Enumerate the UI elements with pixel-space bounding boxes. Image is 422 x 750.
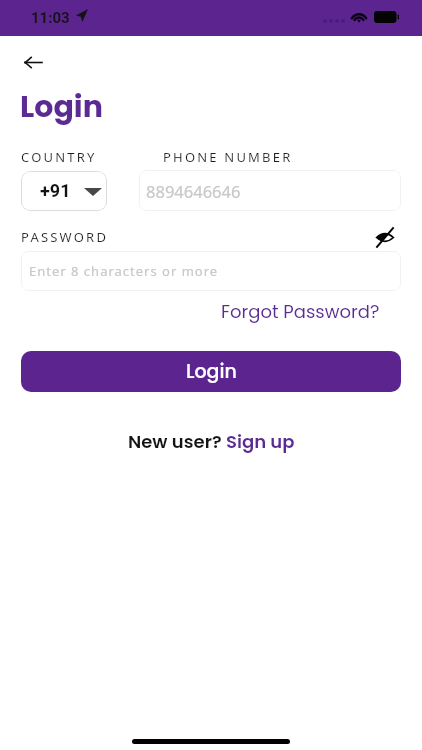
- button[interactable]: New user?: [128, 429, 295, 454]
- staticText: New user?: [128, 429, 226, 454]
- staticText: PASSWORD: [21, 228, 109, 246]
- staticText: Login: [186, 358, 237, 385]
- staticText: PHONE NUMBER: [163, 148, 293, 166]
- button[interactable]: Enter 8 characters or more: [21, 251, 401, 291]
- staticText: 8894646646: [146, 180, 241, 202]
- staticText: +91: [40, 180, 71, 201]
- button[interactable]: Back: [13, 42, 53, 82]
- staticText: Enter 8 characters or more: [29, 262, 219, 280]
- staticText: 11:03: [31, 9, 70, 27]
- button[interactable]: Show password: [370, 224, 400, 250]
- staticText: COUNTRY: [21, 148, 97, 166]
- staticText: Login: [20, 86, 103, 128]
- button[interactable]: 8894646646: [139, 170, 401, 211]
- button[interactable]: Login: [21, 351, 401, 392]
- button[interactable]: Forgot Password?: [221, 299, 380, 324]
- staticText: Sign up: [226, 429, 295, 454]
- button[interactable]: Select country code: [21, 171, 107, 211]
